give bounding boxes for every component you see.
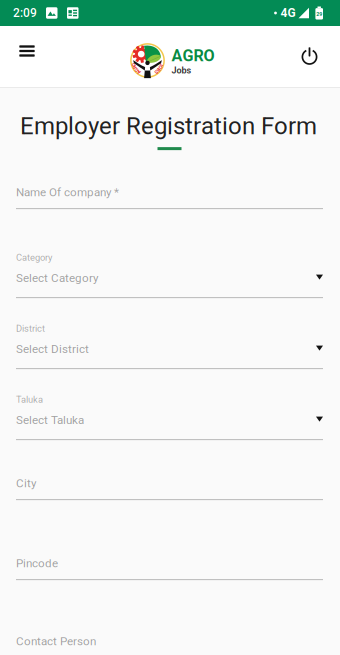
staticText: City bbox=[16, 476, 36, 490]
staticText: O bbox=[145, 43, 149, 49]
button[interactable]: Taluka bbox=[16, 389, 323, 440]
staticText: Select District bbox=[16, 342, 89, 356]
staticText: Name Of company * bbox=[16, 185, 119, 199]
staticText: Select Category bbox=[16, 271, 98, 285]
button[interactable]: Log out bbox=[291, 30, 335, 78]
staticText: Employer Registration Form bbox=[20, 112, 317, 140]
staticText: 4G bbox=[280, 6, 295, 20]
staticText: AGRO bbox=[171, 46, 214, 65]
staticText: Pincode bbox=[16, 556, 58, 570]
staticText: Contact Person bbox=[16, 634, 96, 648]
staticText: Category bbox=[16, 252, 52, 263]
staticText: O bbox=[145, 43, 149, 49]
button[interactable]: Category bbox=[16, 247, 323, 298]
staticText: G bbox=[145, 43, 149, 49]
staticText: R bbox=[146, 43, 149, 49]
button[interactable]: District bbox=[16, 318, 323, 369]
staticText: A bbox=[145, 43, 149, 49]
staticText: District bbox=[16, 323, 45, 334]
staticText: J bbox=[146, 43, 149, 49]
staticText: Jobs bbox=[171, 65, 191, 76]
button[interactable]: Menu bbox=[5, 30, 49, 78]
staticText: S bbox=[146, 43, 149, 49]
staticText: B bbox=[146, 43, 149, 49]
staticText: Taluka bbox=[16, 394, 43, 405]
staticText: 2:09 bbox=[13, 6, 37, 20]
staticText: Select Taluka bbox=[16, 413, 84, 427]
staticText: 29 bbox=[316, 11, 322, 17]
